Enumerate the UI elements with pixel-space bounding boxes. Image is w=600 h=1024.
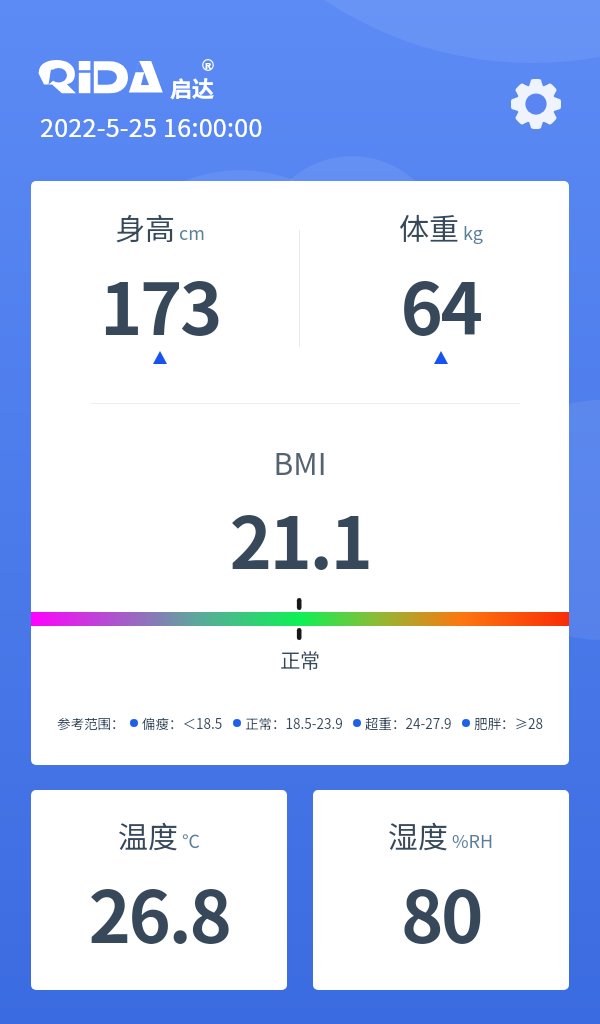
staticText: kg [463, 219, 483, 245]
staticText: 26.8 [31, 859, 287, 963]
staticText: 64 [312, 251, 569, 355]
button[interactable]: 湿度 [313, 790, 569, 990]
staticText: 正常 [31, 645, 569, 674]
staticText: 正常：18.5-23.9 [245, 713, 343, 733]
staticText: 21.1 [31, 485, 569, 589]
staticText: 2022-5-25 16:00:00 [40, 108, 263, 144]
staticText: 体重 [399, 205, 459, 248]
button[interactable]: Settings [511, 79, 561, 129]
button[interactable]: 温度 [31, 790, 287, 990]
staticText: 偏瘦：＜18.5 [142, 713, 223, 733]
staticText: 173 [31, 251, 289, 355]
staticText: 身高 [115, 205, 175, 248]
staticText: 80 [313, 859, 569, 963]
staticText: ℃ [182, 827, 200, 853]
staticText: 温度 [118, 813, 178, 856]
staticText: 超重：24-27.9 [365, 713, 452, 733]
staticText: cm [179, 219, 205, 245]
staticText: BMI [31, 440, 569, 483]
staticText: 湿度 [388, 813, 448, 856]
staticText: 肥胖：≥28 [474, 713, 543, 733]
staticText: 启达 [170, 71, 215, 103]
staticText: R [205, 59, 212, 71]
staticText: %RH [452, 827, 494, 853]
staticText: 参考范围： [57, 713, 125, 733]
